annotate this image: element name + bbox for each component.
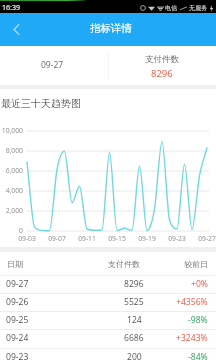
staticText: 5525 bbox=[124, 296, 144, 308]
staticText: 09-19 bbox=[132, 234, 162, 243]
staticText: 支付件数 bbox=[145, 54, 179, 65]
staticText: 日期 bbox=[7, 259, 23, 269]
staticText: +3243% bbox=[176, 332, 208, 344]
staticText: 无服务 bbox=[189, 4, 207, 12]
staticText: 最近三十天趋势图 bbox=[1, 97, 81, 110]
staticText: 8296 bbox=[124, 278, 144, 290]
staticText: 09-23 bbox=[162, 234, 192, 243]
staticText: -98% bbox=[188, 314, 208, 326]
button[interactable]: 09-23 bbox=[0, 348, 216, 360]
staticText: 09-11 bbox=[72, 234, 102, 243]
button[interactable]: Back bbox=[0, 15, 30, 45]
staticText: 124 bbox=[127, 314, 142, 326]
staticText: 6686 bbox=[124, 332, 144, 344]
staticText: 8296 bbox=[151, 67, 173, 80]
staticText: 09-26 bbox=[6, 296, 29, 308]
staticText: 支付件数 bbox=[108, 259, 140, 269]
staticText: 0 bbox=[0, 226, 23, 235]
staticText: +4356% bbox=[176, 296, 208, 308]
button[interactable]: 09-27 bbox=[0, 275, 216, 293]
staticText: 09-07 bbox=[42, 234, 72, 243]
staticText: 09-27 bbox=[6, 278, 29, 290]
staticText: 6,000 bbox=[0, 166, 23, 175]
button[interactable]: 09-25 bbox=[0, 311, 216, 329]
staticText: 200 bbox=[127, 351, 142, 360]
staticText: +0% bbox=[191, 278, 208, 290]
button[interactable]: 09-24 bbox=[0, 329, 216, 347]
staticText: 09-25 bbox=[6, 314, 29, 326]
staticText: 16:39 bbox=[2, 3, 20, 13]
staticText: 指标详情 bbox=[90, 22, 132, 35]
staticText: 09-27 bbox=[41, 59, 64, 71]
staticText: 8,000 bbox=[0, 146, 23, 155]
button[interactable]: 09-26 bbox=[0, 293, 216, 311]
staticText: 较前日 bbox=[184, 259, 208, 269]
staticText: 09-15 bbox=[102, 234, 132, 243]
staticText: 2,000 bbox=[0, 206, 23, 215]
staticText: -84% bbox=[188, 351, 208, 360]
staticText: 09-24 bbox=[6, 332, 29, 344]
staticText: 09-27 bbox=[192, 234, 216, 243]
staticText: 10,000 bbox=[0, 126, 23, 135]
staticText: 电信 bbox=[165, 4, 177, 12]
staticText: 4,000 bbox=[0, 186, 23, 195]
staticText: 09-03 bbox=[12, 234, 42, 243]
staticText: 09-23 bbox=[6, 351, 29, 360]
